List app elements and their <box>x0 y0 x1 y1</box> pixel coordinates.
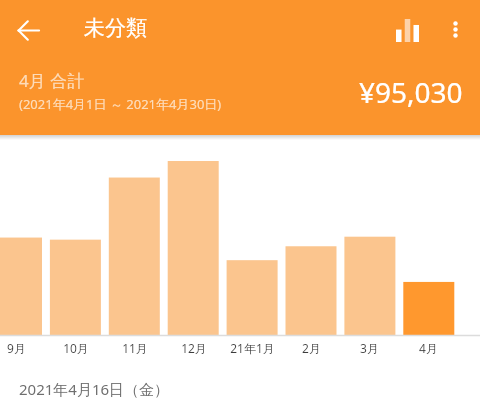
staticText: 3月 <box>360 340 379 356</box>
staticText: 10月 <box>63 340 89 356</box>
staticText: 11月 <box>122 340 148 356</box>
button[interactable]: More options <box>431 5 479 53</box>
staticText: (2021年4月1日 ～ 2021年4月30日) <box>19 95 222 113</box>
staticText: 9月 <box>7 340 26 356</box>
staticText: 2021年4月16日（金） <box>19 379 170 399</box>
staticText: 12月 <box>181 340 207 356</box>
button[interactable]: Back <box>7 9 49 51</box>
button[interactable]: 2021年4月16日（金） <box>0 362 480 403</box>
staticText: 4月 合計 <box>19 69 85 92</box>
staticText: 4月 <box>419 340 438 356</box>
staticText: 21年1月 <box>230 340 275 356</box>
button[interactable]: Chart <box>383 6 431 54</box>
staticText: 未分類 <box>84 15 147 41</box>
staticText: 2月 <box>302 340 321 356</box>
staticText: ¥95,030 <box>359 73 463 111</box>
